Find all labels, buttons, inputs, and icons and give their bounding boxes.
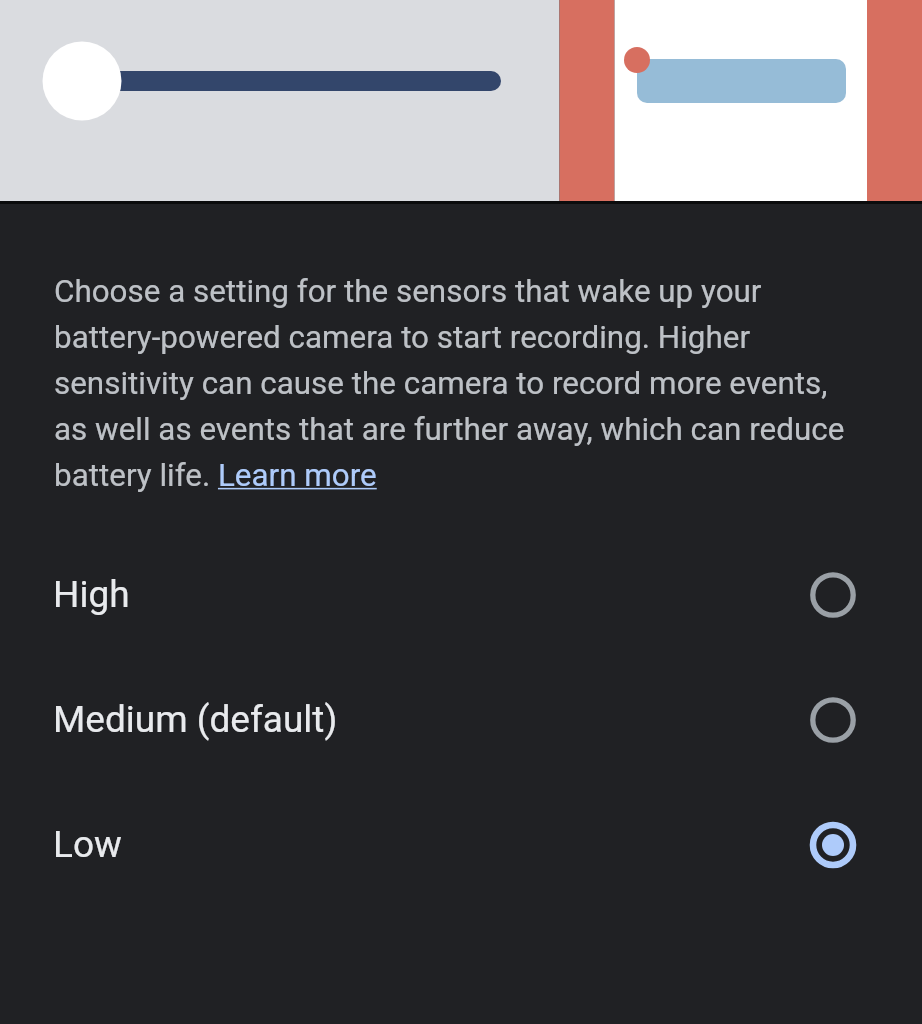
staticText: Choose a setting for the sensors that wa… [54,273,849,494]
staticText: Low [53,823,122,866]
button[interactable]: Low [0,782,922,907]
staticText: Medium (default) [53,698,338,741]
staticText: High [53,573,130,616]
button[interactable]: Learn more [216,459,378,495]
button[interactable]: High [0,532,922,657]
button[interactable]: Medium (default) [0,657,922,782]
